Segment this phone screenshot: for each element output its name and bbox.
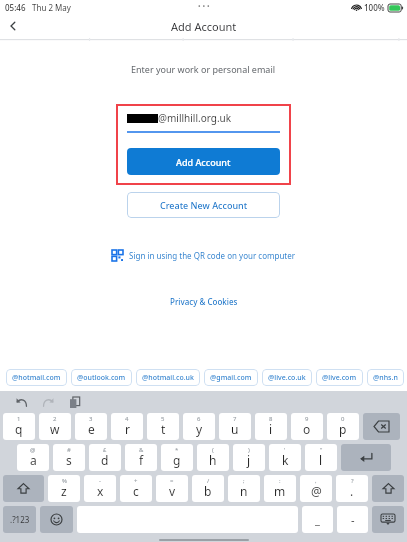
staticText: Create New Account	[160, 199, 248, 211]
button[interactable]: Undo	[12, 393, 30, 411]
button[interactable]: ?	[336, 475, 368, 502]
staticText: d	[101, 452, 109, 468]
button[interactable]: Shift	[372, 475, 404, 502]
staticText: v	[169, 483, 176, 499]
button[interactable]: -	[84, 475, 116, 502]
staticText: ;	[243, 477, 245, 485]
button[interactable]: 5	[147, 413, 179, 440]
staticText: @millhill.org.uk	[158, 111, 232, 125]
button[interactable]: :	[264, 475, 296, 502]
button[interactable]: -	[337, 506, 368, 533]
button[interactable]: @hotmail.com	[6, 369, 67, 386]
staticText: 9	[305, 415, 309, 423]
staticText: @live.co.uk	[268, 373, 306, 383]
staticText: o	[303, 421, 311, 437]
staticText: k	[282, 452, 289, 468]
button[interactable]: )	[233, 444, 265, 471]
staticText: g	[173, 452, 181, 468]
staticText: 2	[53, 415, 57, 423]
staticText: y	[196, 421, 203, 437]
button[interactable]: ,	[300, 475, 332, 502]
staticText: 1	[17, 415, 21, 423]
staticText: &	[139, 446, 144, 454]
staticText: @hotmail.com	[12, 373, 61, 383]
button[interactable]: Return	[341, 444, 391, 471]
staticText: Enter your work or personal email	[131, 63, 276, 75]
button[interactable]: 6	[183, 413, 215, 440]
staticText: -	[351, 512, 355, 527]
button[interactable]: =	[156, 475, 188, 502]
staticText: /	[207, 477, 210, 485]
staticText: • • •	[198, 2, 210, 12]
button[interactable]: "	[305, 444, 337, 471]
button[interactable]: @nhs.n	[367, 369, 404, 386]
staticText: _	[315, 512, 320, 527]
button[interactable]: #	[53, 444, 85, 471]
button[interactable]: .?123	[3, 506, 36, 533]
staticText: )	[248, 446, 250, 454]
button[interactable]: Privacy & Cookies	[166, 292, 242, 311]
staticText: b	[204, 483, 212, 499]
staticText: f	[139, 452, 144, 468]
staticText: 100%	[364, 2, 385, 13]
button[interactable]: Sign in using the QR code on your comput…	[108, 246, 300, 265]
staticText: %	[62, 477, 67, 485]
button[interactable]: Redo	[39, 393, 57, 411]
button[interactable]: 9	[291, 413, 323, 440]
button[interactable]: Add Account	[127, 148, 280, 175]
button[interactable]: Back	[0, 14, 26, 38]
staticText: a	[30, 452, 37, 468]
button[interactable]: 4	[111, 413, 143, 440]
button[interactable]: 8	[255, 413, 287, 440]
button[interactable]: @hotmail.co.uk	[136, 369, 200, 386]
button[interactable]: *	[161, 444, 193, 471]
button[interactable]: Backspace	[363, 413, 400, 440]
staticText: p	[339, 421, 347, 437]
button[interactable]: 2	[39, 413, 71, 440]
button[interactable]: (	[197, 444, 229, 471]
staticText: .	[350, 483, 354, 499]
button[interactable]: /	[192, 475, 224, 502]
button[interactable]: +	[120, 475, 152, 502]
button[interactable]: @live.com	[316, 369, 363, 386]
button[interactable]: @	[17, 444, 49, 471]
button[interactable]: ‘	[269, 444, 301, 471]
button[interactable]: @gmail.com	[204, 369, 258, 386]
staticText: Add Account	[176, 156, 231, 168]
button[interactable]: £	[89, 444, 121, 471]
staticText: w	[50, 421, 60, 437]
button[interactable]: Emoji	[40, 506, 73, 533]
button[interactable]: Hide keyboard	[372, 506, 404, 533]
staticText: Privacy & Cookies	[170, 296, 238, 307]
staticText: @nhs.n	[373, 373, 398, 383]
staticText: 0	[341, 415, 345, 423]
button[interactable]: @live.co.uk	[262, 369, 312, 386]
button[interactable]: 1	[3, 413, 35, 440]
staticText: #	[67, 446, 71, 454]
button[interactable]: 0	[327, 413, 359, 440]
staticText: £	[103, 446, 107, 454]
button[interactable]: Create New Account	[127, 192, 280, 218]
button[interactable]: &	[125, 444, 157, 471]
button[interactable]: ;	[228, 475, 260, 502]
button[interactable]: @outlook.com	[71, 369, 132, 386]
button[interactable]: 7	[219, 413, 251, 440]
staticText: c	[133, 483, 139, 499]
staticText: 8	[269, 415, 273, 423]
button[interactable]: %	[48, 475, 80, 502]
staticText: ,	[315, 477, 317, 485]
staticText: 05:46	[5, 2, 26, 13]
staticText: 3	[89, 415, 93, 423]
button[interactable]: 3	[75, 413, 107, 440]
staticText: ?	[351, 477, 354, 485]
staticText: :	[279, 477, 281, 485]
button[interactable]: Paste	[66, 393, 84, 411]
staticText: n	[240, 483, 248, 499]
staticText: r	[125, 421, 130, 437]
staticText: z	[61, 483, 67, 499]
staticText: q	[15, 421, 23, 437]
button[interactable]: _	[302, 506, 333, 533]
staticText: "	[320, 446, 323, 454]
button[interactable]: Shift	[3, 475, 44, 502]
